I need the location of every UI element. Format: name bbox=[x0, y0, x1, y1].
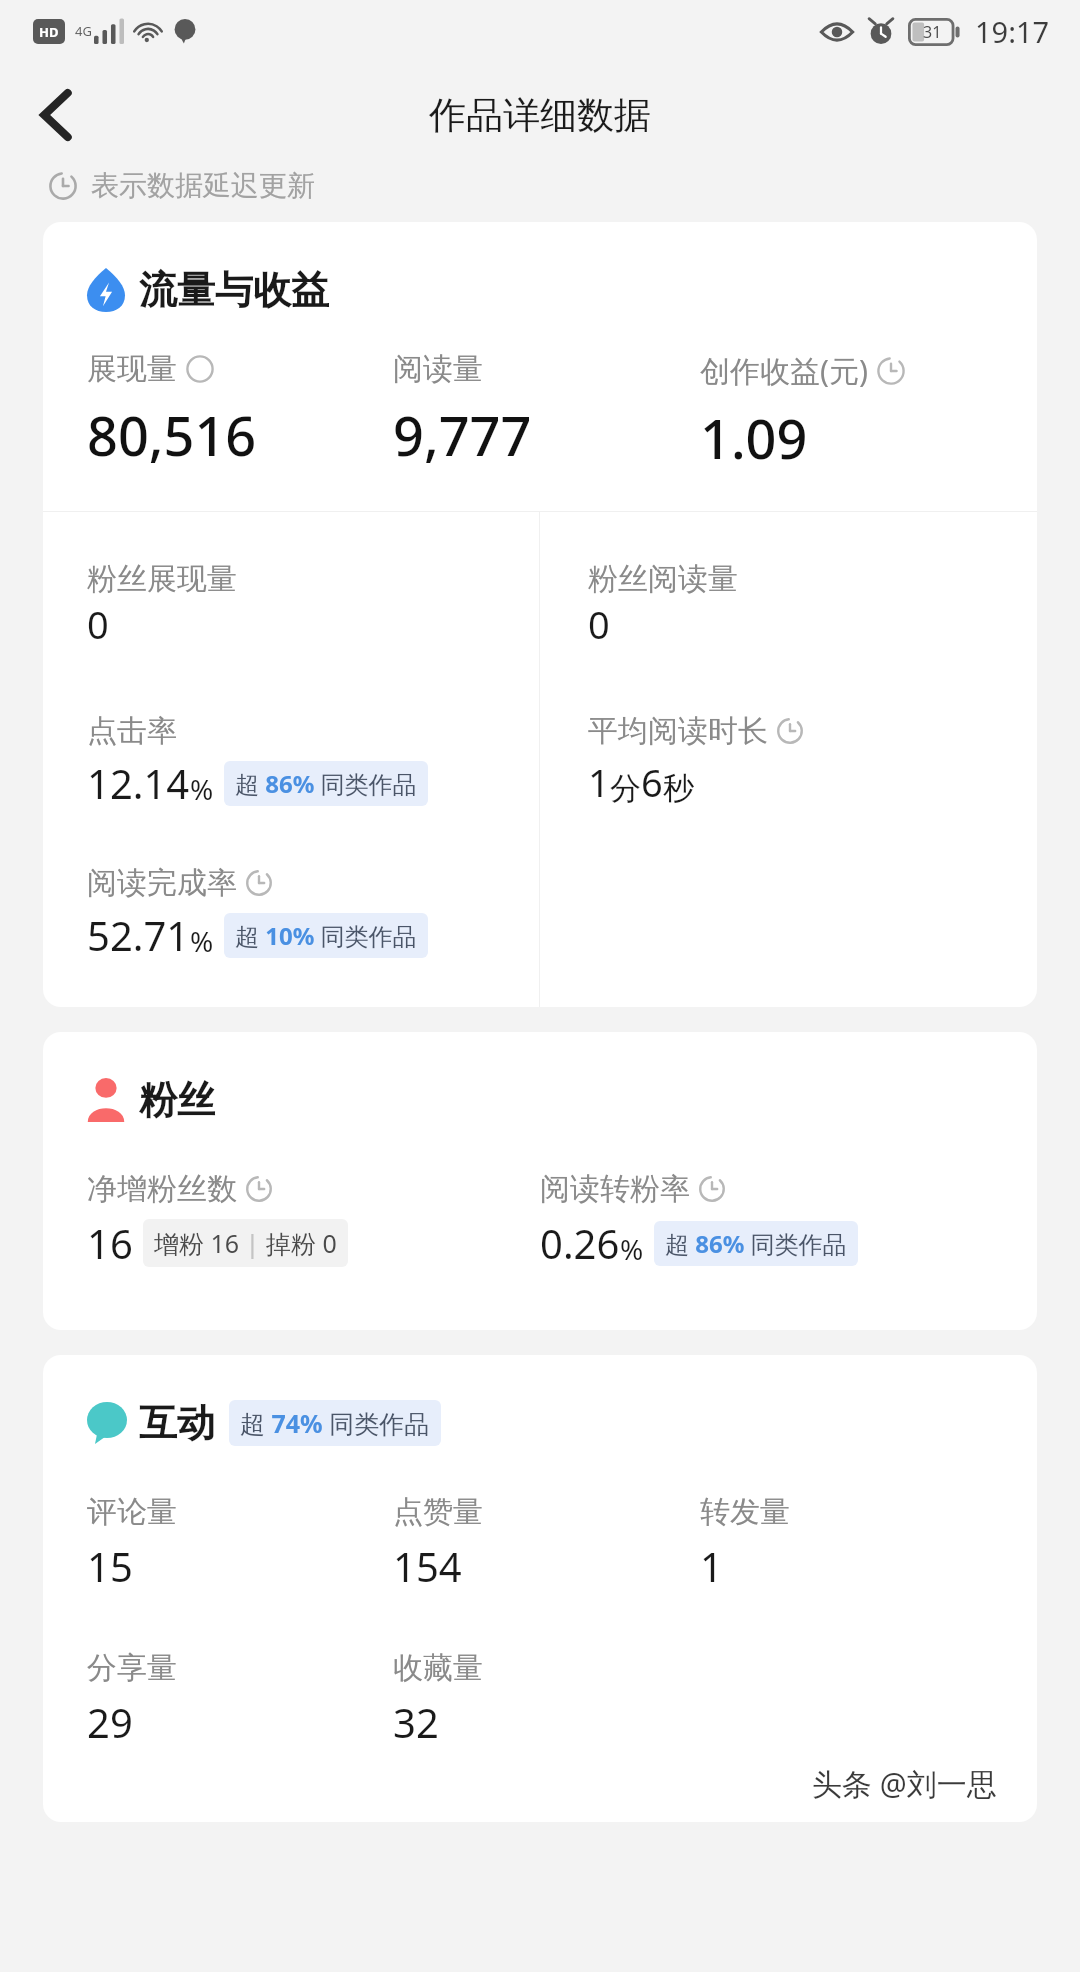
staticText: 80,516 bbox=[87, 398, 257, 472]
staticText: 互动 bbox=[139, 1399, 215, 1447]
staticText: 29 bbox=[87, 1695, 133, 1749]
staticText: 分享量 bbox=[87, 1649, 177, 1687]
staticText: 超 74% 同类作品 bbox=[240, 1406, 430, 1440]
button[interactable]: 粉丝 bbox=[43, 1032, 1037, 1330]
staticText: 阅读量 bbox=[393, 350, 483, 388]
staticText: 平均阅读时长 bbox=[588, 712, 768, 750]
staticText: 52.71 bbox=[87, 908, 190, 962]
staticText: 分 bbox=[610, 769, 641, 808]
staticText: 阅读完成率 bbox=[87, 864, 237, 902]
staticText: % bbox=[190, 770, 214, 808]
staticText: HD bbox=[39, 23, 59, 41]
staticText: 增粉 16 | 掉粉 0 bbox=[154, 1226, 337, 1260]
staticText: 16 bbox=[87, 1216, 133, 1270]
staticText: 净增粉丝数 bbox=[87, 1170, 237, 1208]
staticText: 6 bbox=[641, 756, 663, 808]
staticText: 4G bbox=[75, 22, 92, 40]
button[interactable]: 互动 bbox=[43, 1355, 1037, 1822]
staticText: 19:17 bbox=[975, 12, 1050, 51]
staticText: 1 bbox=[588, 756, 610, 808]
staticText: 评论量 bbox=[87, 1493, 177, 1531]
staticText: 转发量 bbox=[700, 1493, 790, 1531]
staticText: 超 86% 同类作品 bbox=[235, 767, 417, 800]
staticText: 阅读转粉率 bbox=[540, 1170, 690, 1208]
button[interactable]: Back bbox=[18, 77, 94, 153]
staticText: 9,777 bbox=[393, 398, 532, 472]
staticText: 收藏量 bbox=[393, 1649, 483, 1687]
staticText: 头条 @刘一思 bbox=[812, 1763, 997, 1804]
staticText: 154 bbox=[393, 1539, 462, 1593]
staticText: 粉丝阅读量 bbox=[588, 560, 738, 598]
staticText: 创作收益(元) bbox=[700, 350, 868, 391]
staticText: % bbox=[190, 922, 214, 960]
staticText: 超 86% 同类作品 bbox=[665, 1227, 847, 1260]
staticText: 作品详细数据 bbox=[429, 92, 651, 139]
staticText: 1 bbox=[700, 1539, 723, 1593]
staticText: 粉丝 bbox=[139, 1076, 215, 1124]
staticText: 粉丝展现量 bbox=[87, 560, 237, 598]
staticText: 流量与收益 bbox=[139, 266, 329, 314]
staticText: 0 bbox=[87, 598, 109, 650]
staticText: 表示数据延迟更新 bbox=[91, 168, 315, 203]
staticText: 12.14 bbox=[87, 756, 190, 810]
staticText: 秒 bbox=[663, 769, 694, 808]
staticText: 1.09 bbox=[700, 401, 808, 475]
staticText: % bbox=[620, 1230, 644, 1268]
staticText: 点赞量 bbox=[393, 1493, 483, 1531]
staticText: 点击率 bbox=[87, 712, 177, 750]
staticText: 0 bbox=[588, 598, 610, 650]
staticText: 0.26 bbox=[540, 1216, 620, 1270]
staticText: 15 bbox=[87, 1539, 133, 1593]
button[interactable]: 流量与收益 bbox=[43, 222, 1037, 1007]
staticText: 32 bbox=[393, 1695, 439, 1749]
staticText: 展现量 bbox=[87, 350, 177, 388]
staticText: 31 bbox=[923, 21, 942, 43]
staticText: 超 10% 同类作品 bbox=[235, 919, 417, 952]
